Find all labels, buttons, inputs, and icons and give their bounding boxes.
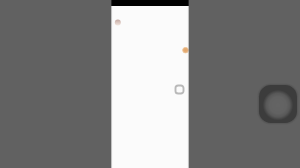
button[interactable]: Add xyxy=(180,45,190,55)
button[interactable]: Photo xyxy=(174,84,185,95)
button[interactable]: Record xyxy=(259,85,297,123)
button[interactable]: Profile xyxy=(112,17,122,27)
